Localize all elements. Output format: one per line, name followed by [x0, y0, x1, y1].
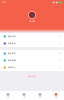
staticText: 优惠券包: [8, 42, 16, 45]
button[interactable]: 我的订单: [0, 33, 64, 40]
button[interactable]: 退出登录: [0, 74, 64, 79]
staticText: 张小明: [29, 20, 35, 23]
button[interactable]: 分类: [16, 91, 32, 100]
staticText: 地址管理: [8, 52, 16, 55]
button[interactable]: 我的: [48, 91, 64, 100]
button[interactable]: 购物车: [32, 91, 48, 100]
staticText: 分类: [23, 96, 25, 98]
staticText: 我的订单: [8, 35, 16, 38]
button[interactable]: 我的收藏: [0, 57, 64, 64]
staticText: 设置中心: [8, 66, 16, 69]
staticText: 我的: [55, 96, 57, 98]
staticText: 购物车: [38, 96, 41, 98]
staticText: 首页: [7, 96, 9, 98]
staticText: 退出登录: [28, 75, 36, 78]
button[interactable]: 地址管理: [0, 50, 64, 57]
staticText: 9:41: [2, 1, 6, 4]
button[interactable]: 设置中心: [0, 64, 64, 71]
staticText: 我的收藏: [8, 59, 16, 62]
button[interactable]: 首页: [0, 91, 16, 100]
button[interactable]: 优惠券包: [0, 40, 64, 47]
